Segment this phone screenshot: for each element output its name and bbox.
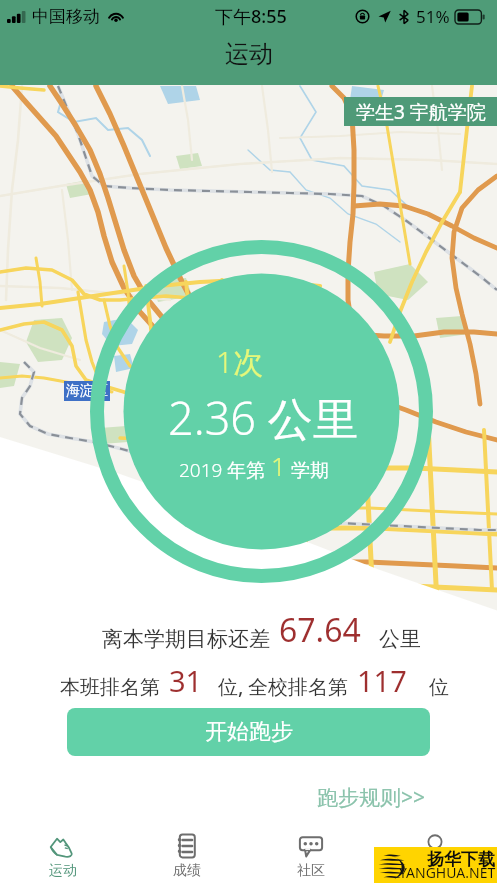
button[interactable]: 成绩 [125, 823, 249, 880]
staticText: 社区 [297, 862, 325, 880]
button[interactable]: 运动 [0, 823, 125, 880]
button[interactable]: 社区 [249, 823, 373, 880]
staticText: 中国移动 [32, 6, 100, 27]
staticText: 成绩 [173, 862, 201, 880]
staticText: 开始跑步 [205, 718, 293, 746]
staticText: 学生3 宇航学院 [356, 99, 486, 125]
staticText: 2.36 公里 [168, 387, 358, 448]
button[interactable]: 学生3 宇航学院 [344, 97, 497, 126]
staticText: 运动 [225, 39, 273, 69]
staticText: 离本学期目标还差 [102, 626, 270, 652]
button[interactable]: 开始跑步 [67, 708, 430, 756]
staticText: 本班排名第 [60, 675, 160, 700]
button[interactable]: 我的 [373, 823, 497, 880]
staticText: 117 [357, 661, 407, 700]
staticText: 1次 [216, 341, 264, 382]
staticText: 31 [169, 661, 203, 700]
staticText: 1 [271, 448, 286, 483]
staticText: 全校排名第 [248, 675, 348, 700]
staticText: 扬华下载 [427, 849, 495, 870]
staticText: 运动 [49, 862, 77, 880]
staticText: 下午8:55 [215, 4, 287, 29]
button[interactable]: 跑步规则>> [317, 783, 426, 812]
staticText: 位 [429, 675, 449, 700]
staticText: 学期 [291, 459, 329, 483]
staticText: 我的 [421, 862, 449, 880]
staticText: 位, [218, 673, 244, 700]
staticText: 67.64 [279, 608, 361, 652]
staticText: 2019 年第 [179, 457, 266, 483]
staticText: 51% [416, 5, 450, 28]
staticText: 公里 [379, 626, 421, 652]
staticText: 跑步规则>> [317, 783, 426, 812]
staticText: 海淀区 [66, 382, 108, 400]
staticText: YANGHUA.NET [399, 863, 496, 882]
